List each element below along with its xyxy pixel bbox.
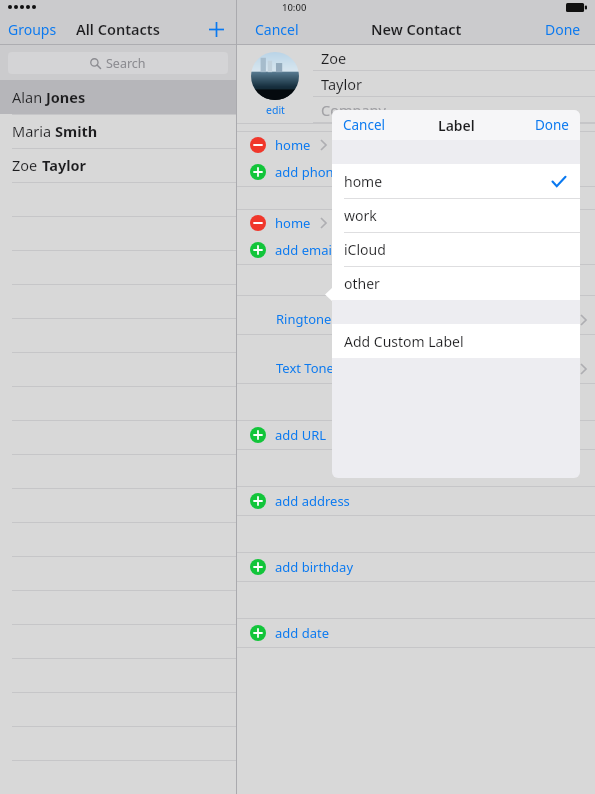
button[interactable]: Alan	[0, 80, 236, 114]
button[interactable]: home	[237, 210, 595, 236]
staticText: Smith	[55, 121, 98, 141]
button[interactable]: Cancel	[343, 116, 386, 134]
staticText: All Contacts	[76, 19, 160, 39]
staticText: home	[275, 136, 311, 154]
button[interactable]: home	[332, 164, 580, 198]
button[interactable]: Zoe	[0, 148, 236, 182]
button[interactable]: add date	[237, 619, 595, 647]
button[interactable]: Maria	[0, 114, 236, 148]
staticText: add date	[275, 624, 329, 642]
staticText: iCloud	[344, 240, 386, 259]
staticText: work	[344, 206, 377, 225]
button[interactable]: work	[332, 198, 580, 232]
button[interactable]: Edit photo	[251, 52, 299, 100]
staticText: Alan	[12, 87, 46, 107]
staticText: Text Tone	[276, 359, 334, 377]
staticText: Taylor	[42, 155, 87, 175]
button[interactable]: Done	[535, 116, 569, 134]
button[interactable]: Search	[8, 52, 228, 74]
button[interactable]: Add Custom Label	[332, 324, 580, 358]
button[interactable]: add email	[237, 236, 595, 264]
staticText: Taylor	[321, 74, 362, 94]
button[interactable]: Company	[313, 97, 595, 123]
staticText: add URL	[275, 426, 327, 444]
staticText: Jones	[46, 87, 86, 107]
button[interactable]: add address	[237, 487, 595, 515]
staticText: 10:00	[282, 1, 307, 14]
button[interactable]: Cancel	[255, 20, 299, 39]
button[interactable]: other	[332, 266, 580, 300]
staticText: add phone	[275, 163, 341, 181]
button[interactable]: home	[237, 132, 595, 158]
staticText: Maria	[12, 121, 55, 141]
staticText: New Contact	[371, 19, 462, 39]
staticText: Company	[321, 100, 386, 120]
staticText: other	[344, 274, 380, 293]
staticText: add birthday	[275, 558, 354, 576]
button[interactable]: Add contact	[204, 17, 228, 41]
staticText: home	[275, 214, 311, 232]
staticText: Search	[106, 55, 146, 72]
button[interactable]: Ringtone	[237, 296, 595, 334]
button[interactable]: add phone	[237, 158, 595, 186]
button[interactable]: add birthday	[237, 553, 595, 581]
staticText: Add Custom Label	[344, 332, 464, 351]
button[interactable]: Text Tone	[237, 335, 595, 383]
staticText: Zoe	[12, 155, 42, 175]
staticText: add email	[275, 241, 336, 259]
button[interactable]: iCloud	[332, 232, 580, 266]
button[interactable]: Groups	[8, 20, 57, 39]
button[interactable]: Zoe	[313, 45, 595, 71]
button[interactable]: Taylor	[313, 71, 595, 97]
staticText: Zoe	[321, 48, 347, 68]
staticText: add address	[275, 492, 350, 510]
button[interactable]: add URL	[237, 421, 595, 449]
staticText: Ringtone	[276, 310, 332, 328]
staticText: Label	[438, 116, 475, 135]
button[interactable]: edit	[266, 103, 285, 117]
button[interactable]: Done	[545, 20, 581, 39]
staticText: home	[344, 172, 383, 191]
